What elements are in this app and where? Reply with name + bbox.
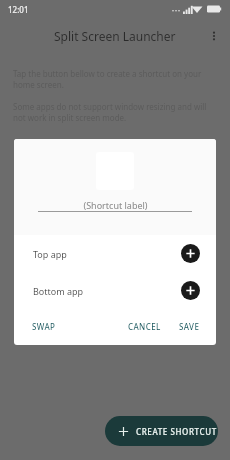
- button[interactable]: Top app: [14, 235, 216, 272]
- staticText: CANCEL: [128, 321, 161, 332]
- staticText: SWAP: [32, 321, 56, 332]
- staticText: Some apps do not support window resizing…: [13, 101, 217, 123]
- button[interactable]: More options: [202, 24, 226, 48]
- staticText: SAVE: [179, 321, 200, 332]
- button[interactable]: Add bottom app: [181, 281, 200, 300]
- staticText: Tap the button bellow to create a shortc…: [13, 68, 217, 90]
- button[interactable]: SWAP: [26, 317, 62, 336]
- button[interactable]: Add top app: [181, 244, 200, 263]
- button[interactable]: CREATE SHORTCUT: [105, 416, 218, 446]
- button[interactable]: Bottom app: [14, 272, 216, 309]
- staticText: CREATE SHORTCUT: [136, 426, 217, 437]
- staticText: Bottom app: [33, 285, 84, 297]
- button[interactable]: CANCEL: [122, 317, 167, 336]
- button[interactable]: SAVE: [173, 317, 206, 336]
- staticText: Top app: [33, 248, 67, 260]
- staticText: (Shortcut label): [83, 199, 148, 211]
- staticText: Split Screen Launcher: [54, 28, 176, 44]
- staticText: 12:01: [8, 4, 29, 15]
